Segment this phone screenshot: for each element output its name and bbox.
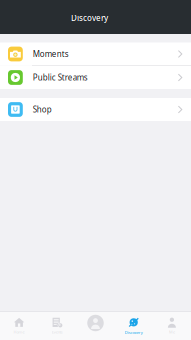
button[interactable]: Profile <box>76 312 115 340</box>
button[interactable]: Shop <box>0 98 191 121</box>
staticText: Events <box>52 329 63 335</box>
button[interactable]: Me <box>153 312 191 340</box>
staticText: Me <box>169 329 175 335</box>
staticText: Moments <box>33 49 69 59</box>
staticText: Discovery <box>125 330 143 335</box>
staticText: Shop <box>33 104 52 115</box>
button[interactable]: Moments <box>0 42 191 65</box>
staticText: Discovery <box>71 13 108 23</box>
staticText: Public Streams <box>33 72 88 83</box>
button[interactable]: Events <box>38 312 76 340</box>
button[interactable]: Discovery <box>115 312 153 340</box>
staticText: Home <box>14 329 25 335</box>
button[interactable]: Home <box>0 312 38 340</box>
button[interactable]: Public Streams <box>0 66 191 89</box>
